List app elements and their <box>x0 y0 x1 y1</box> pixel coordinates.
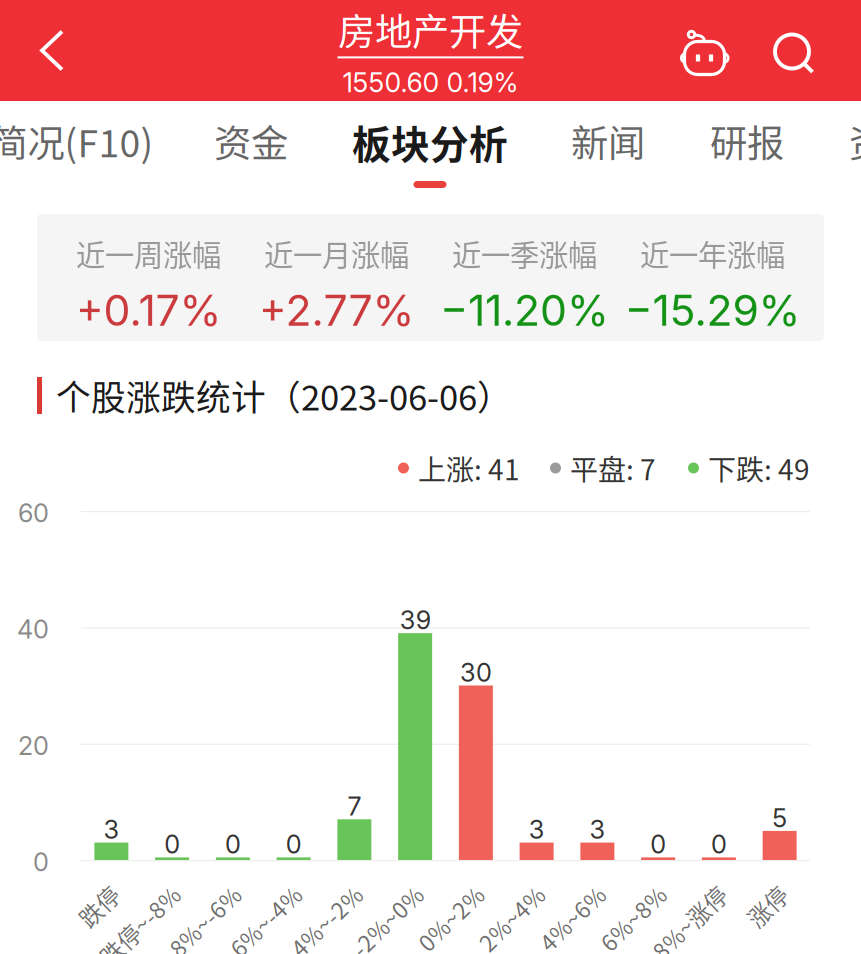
staticText: −11.20% <box>440 284 609 336</box>
staticText: 板块分析 <box>352 114 508 170</box>
staticText: 近一年涨幅 <box>640 232 785 274</box>
staticText: 40 <box>17 614 49 645</box>
staticText: 资金 <box>214 114 288 168</box>
button[interactable]: 新闻 <box>563 101 653 200</box>
staticText: 8%~涨停 <box>630 874 723 906</box>
staticText: 1550.60 0.19% <box>342 66 518 99</box>
staticText: 6%~8% <box>581 874 662 906</box>
staticText: 60 <box>18 498 49 528</box>
staticText: +0.17% <box>75 284 221 336</box>
staticText: 个股涨跌统计（2023-06-06） <box>56 370 512 421</box>
staticText: −15.29% <box>624 284 800 336</box>
button[interactable]: Search <box>752 2 834 103</box>
button[interactable]: Back <box>0 0 104 101</box>
staticText: 0 <box>286 829 302 860</box>
staticText: 3 <box>529 814 545 845</box>
staticText: 跌停~-8% <box>75 874 176 906</box>
staticText: 下跌: 49 <box>708 448 810 488</box>
staticText: 0 <box>33 847 49 877</box>
staticText: 涨停 <box>738 874 784 906</box>
staticText: 0%~2% <box>399 874 480 906</box>
staticText: 上涨: 41 <box>418 448 520 488</box>
staticText: 5 <box>772 803 787 833</box>
staticText: 2%~4% <box>460 874 541 906</box>
staticText: +2.77% <box>258 284 414 336</box>
staticText: -2%~0% <box>330 874 419 906</box>
staticText: 20 <box>18 730 49 761</box>
staticText: 3 <box>589 814 605 845</box>
staticText: 0 <box>225 829 241 860</box>
staticText: 近一月涨幅 <box>264 232 409 274</box>
staticText: 0 <box>164 829 180 860</box>
button[interactable]: 资金 <box>206 101 296 200</box>
button[interactable]: 研报 <box>702 101 792 200</box>
staticText: 39 <box>400 605 431 635</box>
staticText: 近一季涨幅 <box>452 232 597 274</box>
staticText: 0 <box>650 829 666 860</box>
staticText: -4%~-2% <box>261 874 358 906</box>
button[interactable]: 简况(F10) <box>0 101 159 200</box>
staticText: 资料 <box>849 114 861 168</box>
staticText: 4%~6% <box>520 874 601 906</box>
staticText: 平盘: 7 <box>570 448 656 488</box>
button[interactable]: 板块分析 <box>350 101 510 200</box>
button[interactable]: AI assistant <box>663 3 747 104</box>
staticText: -6%~-4% <box>201 874 298 906</box>
staticText: 近一周涨幅 <box>76 232 221 274</box>
staticText: 研报 <box>710 114 784 168</box>
staticText: 30 <box>460 657 492 688</box>
staticText: 新闻 <box>571 114 645 168</box>
staticText: 房地产开发 <box>338 2 523 56</box>
staticText: -8%~-6% <box>140 874 237 906</box>
staticText: 3 <box>103 814 119 845</box>
staticText: 简况(F10) <box>0 114 153 168</box>
staticText: 跌停 <box>69 874 115 906</box>
staticText: 7 <box>347 791 361 822</box>
button[interactable]: 资料 <box>841 101 861 200</box>
staticText: 0 <box>711 829 727 860</box>
